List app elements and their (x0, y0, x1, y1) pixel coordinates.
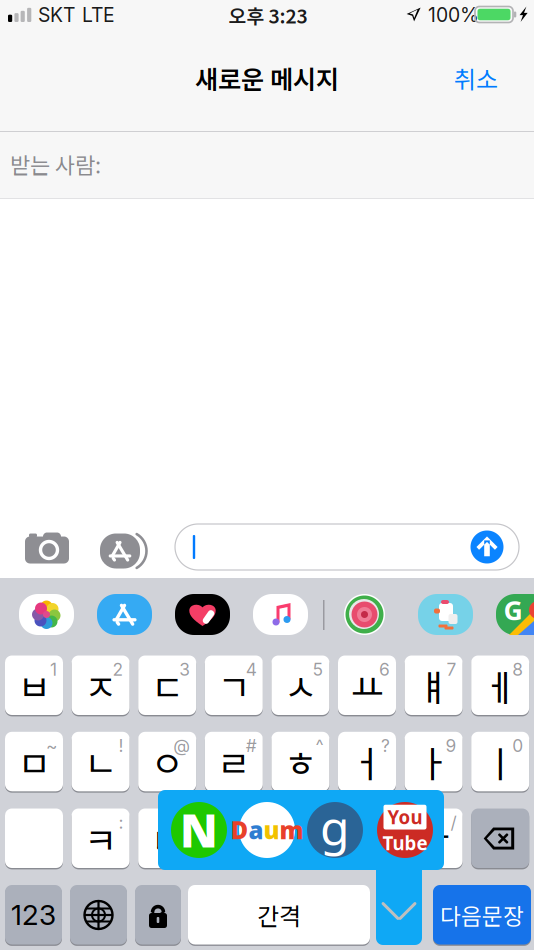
button[interactable]: ㄷ (138, 655, 196, 717)
staticText: 4 (246, 659, 257, 680)
staticText: _ (382, 812, 390, 833)
button[interactable]: ㄱ (205, 655, 263, 717)
staticText: Tube (382, 830, 427, 855)
staticText: " (182, 812, 190, 833)
staticText: ㅏ (417, 735, 450, 788)
staticText: 다음문장 (440, 898, 524, 931)
staticText: 6 (379, 659, 390, 680)
button[interactable]: 다음문장 (433, 885, 531, 946)
staticText: LTE (82, 3, 115, 27)
staticText: ㅁ (17, 735, 50, 788)
staticText: ㅇ (151, 735, 184, 788)
button[interactable]: ㅣ (471, 732, 529, 793)
staticText: 8 (512, 659, 523, 680)
button[interactable]: Take photo (25, 530, 69, 563)
button[interactable]: ㄴ (72, 732, 130, 793)
button[interactable] (471, 808, 529, 870)
button[interactable]: ㅒ (405, 655, 463, 717)
button[interactable] (5, 808, 63, 870)
staticText: ! (119, 735, 124, 756)
staticText: # (246, 735, 257, 756)
button[interactable]: Daum (239, 802, 295, 858)
button[interactable]: YouTube (377, 802, 433, 858)
staticText: ㅌ (151, 812, 184, 864)
button[interactable]: 123 (5, 885, 62, 946)
button[interactable]: Send (470, 530, 503, 563)
staticText: 새로운 메시지 (195, 60, 339, 96)
button[interactable]: ㄹ (205, 732, 263, 793)
staticText: 7 (447, 659, 457, 680)
button[interactable]: ㅍ (271, 808, 329, 870)
staticText: ㅣ (484, 735, 517, 788)
staticText: ㄷ (151, 659, 184, 711)
button[interactable]: ㅈ (72, 655, 130, 717)
button[interactable]: App Store (97, 594, 152, 635)
button[interactable] (135, 885, 181, 946)
staticText: ㅂ (17, 659, 50, 711)
staticText: ㅊ (217, 812, 250, 864)
staticText: 5 (312, 659, 323, 680)
staticText: ㅈ (84, 659, 117, 711)
staticText: ㅔ (484, 659, 517, 711)
staticText: D (230, 814, 248, 846)
staticText: 100% (428, 3, 479, 27)
staticText: g (320, 795, 350, 859)
staticText: 2 (113, 659, 124, 680)
staticText: ; (252, 812, 257, 833)
button[interactable]: Google (307, 802, 363, 858)
button[interactable] (70, 885, 127, 946)
button[interactable]: iMessage apps (99, 529, 149, 573)
button[interactable]: ㅏ (405, 732, 463, 793)
staticText: ㅒ (417, 659, 450, 711)
button[interactable]: Maps (496, 594, 534, 635)
staticText: : (119, 812, 124, 833)
staticText: You (387, 805, 422, 829)
button[interactable]: ㅛ (338, 655, 396, 717)
staticText: 1 (50, 659, 57, 680)
staticText: ~ (46, 735, 57, 756)
staticText: a (248, 814, 263, 846)
staticText: G (503, 592, 522, 628)
staticText: 간격 (257, 897, 301, 932)
button[interactable]: ㅂ (5, 655, 63, 717)
button[interactable]: ㅌ (138, 808, 196, 870)
button[interactable]: ㅅ (271, 655, 329, 717)
staticText: ㄴ (84, 735, 117, 788)
staticText: 0 (512, 735, 523, 756)
staticText: ㅓ (350, 735, 383, 788)
button[interactable]: Crossy Road (418, 594, 473, 635)
button[interactable]: Music (253, 594, 308, 635)
button[interactable]: ㅁ (5, 732, 63, 793)
button[interactable]: ㅜ (405, 808, 463, 870)
button[interactable]: 간격 (188, 885, 370, 946)
staticText: ㅠ (350, 812, 383, 864)
staticText: u (263, 814, 279, 846)
button[interactable]: ㅋ (72, 808, 130, 870)
staticText: 오후 3:23 (228, 1, 307, 29)
button[interactable]: Photos (19, 594, 74, 635)
staticText: ? (381, 735, 390, 756)
button[interactable]: ㅊ (205, 808, 263, 870)
button[interactable]: ㅇ (138, 732, 196, 793)
staticText: 받는 사람: (10, 148, 101, 180)
button[interactable]: 취소 (420, 56, 498, 100)
button[interactable]: ㅔ (471, 655, 529, 717)
staticText: ' (318, 812, 323, 833)
staticText: 123 (11, 898, 56, 932)
staticText: 3 (179, 659, 190, 680)
button[interactable]: ㅠ (338, 808, 396, 870)
staticText: ㅅ (284, 659, 317, 711)
button[interactable]: ㅎ (271, 732, 329, 793)
staticText: @ (173, 735, 190, 756)
button[interactable]: ㅓ (338, 732, 396, 793)
button[interactable]: Digital Touch (175, 594, 230, 635)
staticText: ㄹ (217, 735, 250, 788)
staticText: / (451, 812, 457, 833)
button[interactable]: Stickers (337, 594, 392, 635)
staticText: ㅋ (84, 812, 117, 864)
staticText: ㅎ (284, 735, 317, 788)
staticText: m (279, 814, 303, 846)
staticText: 9 (446, 735, 457, 756)
staticText: N (180, 800, 218, 860)
button[interactable]: Naver (171, 802, 227, 858)
